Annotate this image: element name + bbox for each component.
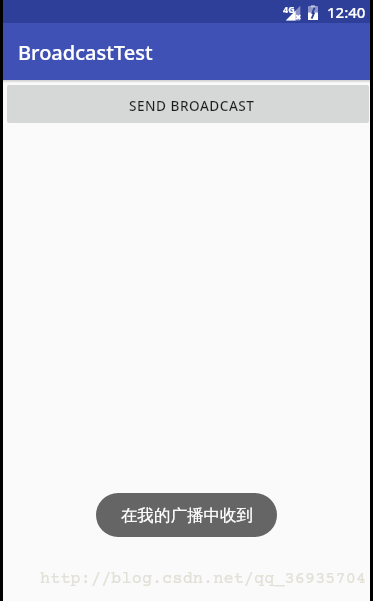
button[interactable]: SEND BROADCAST xyxy=(7,85,369,123)
staticText: BroadcastTest xyxy=(18,39,153,66)
staticText: http://blog.csdn.net/qq_36935704 xyxy=(40,570,367,589)
staticText: SEND BROADCAST xyxy=(129,96,255,115)
staticText: 4G xyxy=(283,3,295,15)
staticText: 在我的广播中收到 xyxy=(121,505,253,526)
staticText: 12:40 xyxy=(327,2,366,22)
